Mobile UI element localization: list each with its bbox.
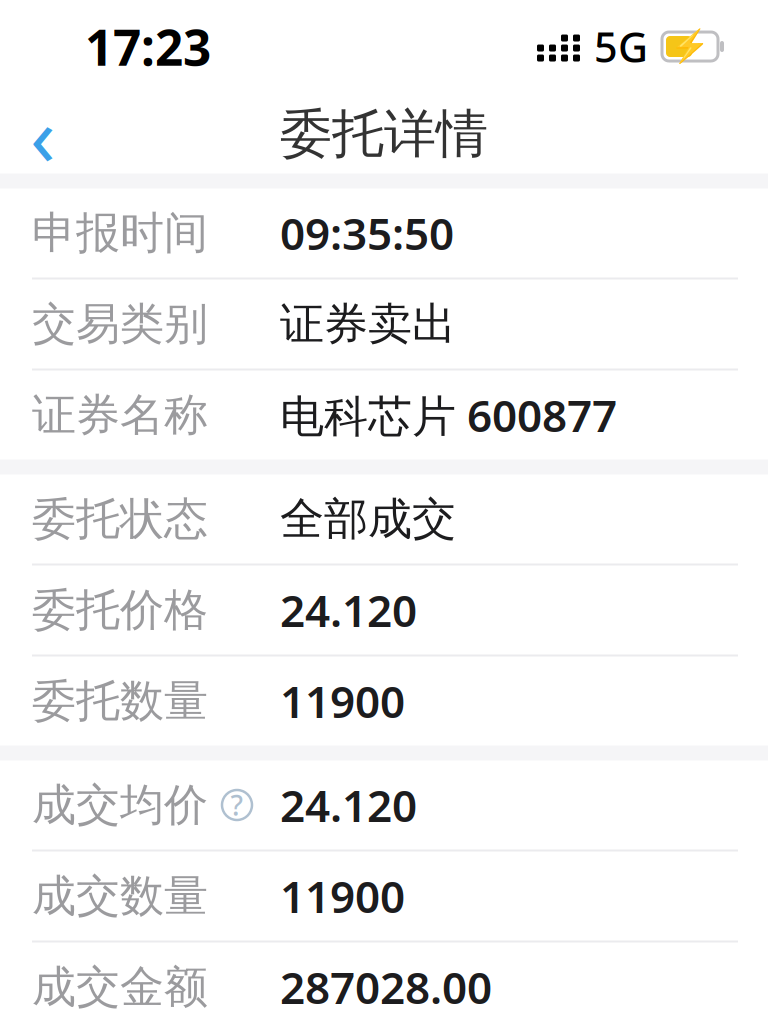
staticText: ‹ <box>30 79 56 189</box>
staticText: 交易类别 <box>32 297 208 351</box>
staticText: ? <box>230 786 243 824</box>
staticText: 5G <box>594 19 648 74</box>
staticText: 成交金额 <box>32 960 208 1014</box>
staticText: 09:35:50 <box>280 204 454 262</box>
staticText: 287028.00 <box>280 958 492 1016</box>
staticText: ⚡ <box>670 28 710 65</box>
staticText: 成交均价 <box>32 778 208 832</box>
staticText: 17:23 <box>85 14 211 79</box>
staticText: 委托数量 <box>32 674 208 728</box>
staticText: 委托价格 <box>32 583 208 637</box>
staticText: 证券卖出 <box>280 297 456 351</box>
staticText: 委托状态 <box>32 492 208 546</box>
staticText: 11900 <box>280 867 405 925</box>
staticText: 申报时间 <box>32 206 208 260</box>
staticText: 成交数量 <box>32 869 208 923</box>
staticText: 电科芯片 600877 <box>280 386 617 444</box>
staticText: 24.120 <box>280 776 417 834</box>
button[interactable]: 返回 <box>0 93 86 175</box>
staticText: 委托详情 <box>280 102 488 166</box>
staticText: 24.120 <box>280 581 417 639</box>
staticText: 全部成交 <box>280 492 456 546</box>
staticText: 证券名称 <box>32 388 208 442</box>
staticText: 11900 <box>280 672 405 730</box>
